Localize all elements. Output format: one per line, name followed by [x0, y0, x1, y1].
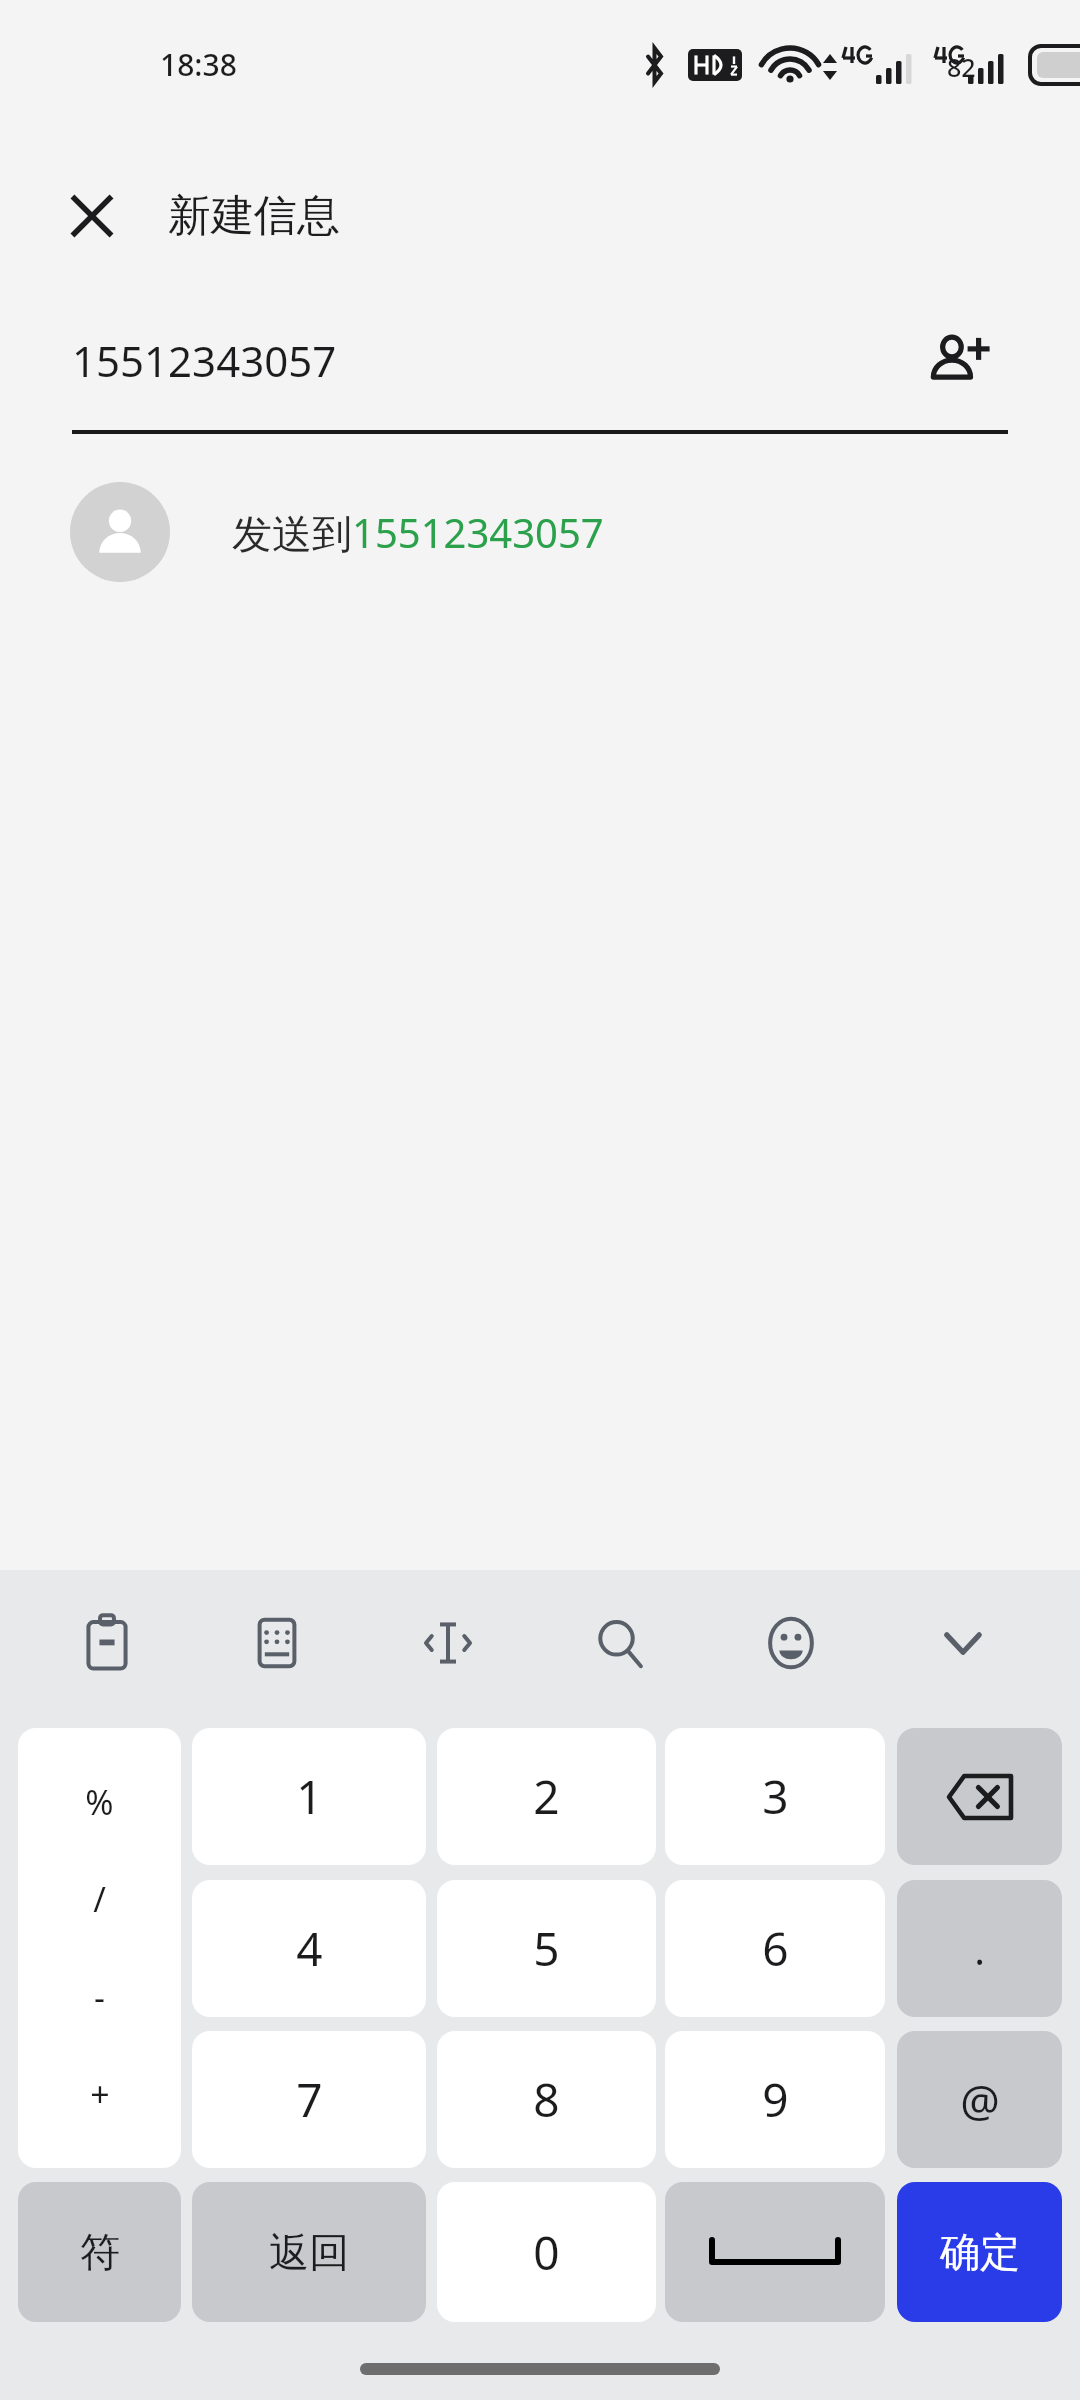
staticText: 返回	[269, 2227, 349, 2277]
button[interactable]: 2	[437, 1728, 656, 1865]
button[interactable]: Backspace	[897, 1728, 1062, 1865]
button[interactable]: Add contact	[900, 310, 1020, 420]
button[interactable]: .	[897, 1880, 1062, 2017]
button[interactable]: Hide keyboard	[908, 1588, 1018, 1698]
button[interactable]: Cursor move	[393, 1588, 503, 1698]
staticText: %	[85, 1779, 114, 1825]
staticText: 发送到15512343057	[232, 505, 604, 560]
button[interactable]: 8	[437, 2031, 656, 2168]
button[interactable]: 确定	[897, 2182, 1062, 2322]
staticText: 15512343057	[72, 332, 337, 389]
staticText: 18:38	[160, 44, 237, 85]
staticText: 2	[533, 1765, 560, 1828]
button[interactable]: Keyboard layout	[222, 1588, 332, 1698]
button[interactable]: Close	[56, 180, 128, 252]
staticText: +	[90, 2071, 110, 2117]
staticText: 3	[762, 1765, 789, 1828]
staticText: 4	[296, 1917, 323, 1980]
staticText: 8	[533, 2068, 560, 2131]
button[interactable]: %	[18, 1728, 181, 2168]
staticText: 6	[762, 1917, 789, 1980]
staticText: 1	[296, 1765, 323, 1828]
staticText: .	[974, 1922, 985, 1976]
button[interactable]: 0	[437, 2182, 656, 2322]
button[interactable]: 符	[18, 2182, 181, 2322]
button[interactable]: Emoji	[736, 1588, 846, 1698]
staticText: 新建信息	[168, 189, 340, 243]
button[interactable]: 1	[192, 1728, 426, 1865]
staticText: 9	[762, 2068, 789, 2131]
button[interactable]: Space	[665, 2182, 885, 2322]
button[interactable]: @	[897, 2031, 1062, 2168]
button[interactable]: 返回	[192, 2182, 426, 2322]
button[interactable]: 3	[665, 1728, 885, 1865]
button[interactable]: 4	[192, 1880, 426, 2017]
button[interactable]: Clipboard	[52, 1588, 162, 1698]
button[interactable]: Search	[565, 1588, 675, 1698]
staticText: @	[960, 2070, 1000, 2130]
staticText: 82	[947, 50, 976, 84]
staticText: 5	[533, 1917, 560, 1980]
button[interactable]: 7	[192, 2031, 426, 2168]
button[interactable]: 6	[665, 1880, 885, 2017]
staticText: 0	[533, 2221, 560, 2284]
staticText: 7	[296, 2068, 323, 2131]
button[interactable]: 5	[437, 1880, 656, 2017]
button[interactable]: 9	[665, 2031, 885, 2168]
staticText: -	[94, 1974, 105, 2020]
staticText: 符	[80, 2227, 120, 2277]
button[interactable]: 发送到15512343057	[0, 462, 1080, 602]
staticText: 确定	[940, 2227, 1020, 2277]
staticText: /	[93, 1876, 106, 1922]
